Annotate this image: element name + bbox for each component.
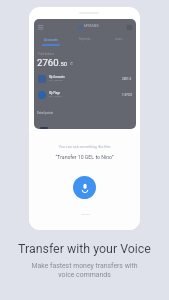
- staticText: My Accounts: [49, 75, 65, 78]
- button[interactable]: Payments: [68, 38, 102, 41]
- button[interactable]: Menu: [37, 24, 44, 31]
- staticText: 2451.5: [122, 77, 132, 81]
- staticText: Make fastest money transfers with voice …: [0, 262, 169, 279]
- staticText: .50: [59, 61, 68, 68]
- button[interactable]: My Plage: [34, 87, 136, 102]
- button[interactable]: My Accounts: [34, 71, 136, 86]
- staticText: Accounts: [44, 38, 58, 42]
- staticText: Detail points: [37, 111, 54, 114]
- button[interactable]: Accounts: [34, 38, 68, 46]
- staticText: 1 570.0: [122, 93, 132, 97]
- button[interactable]: Loans: [102, 38, 136, 41]
- staticText: Loans: [115, 38, 123, 41]
- staticText: GEL, Standard: [49, 79, 63, 82]
- staticText: You can ask something like this: [29, 145, 140, 149]
- staticText: ₾: [70, 61, 74, 67]
- staticText: “Transfer 10 GEL to Nino”: [29, 154, 140, 160]
- button[interactable]: Start voice command: [73, 176, 96, 199]
- button[interactable]: Notifications: [126, 24, 133, 31]
- staticText: Transfer with your Voice: [0, 241, 169, 256]
- staticText: Total balance: [38, 52, 55, 55]
- staticText: GEL, Savings: [49, 95, 62, 98]
- staticText: 2760: [37, 57, 59, 68]
- staticText: MYBANK: [84, 24, 99, 28]
- staticText: My Plage: [49, 91, 61, 94]
- staticText: Payments: [79, 38, 91, 41]
